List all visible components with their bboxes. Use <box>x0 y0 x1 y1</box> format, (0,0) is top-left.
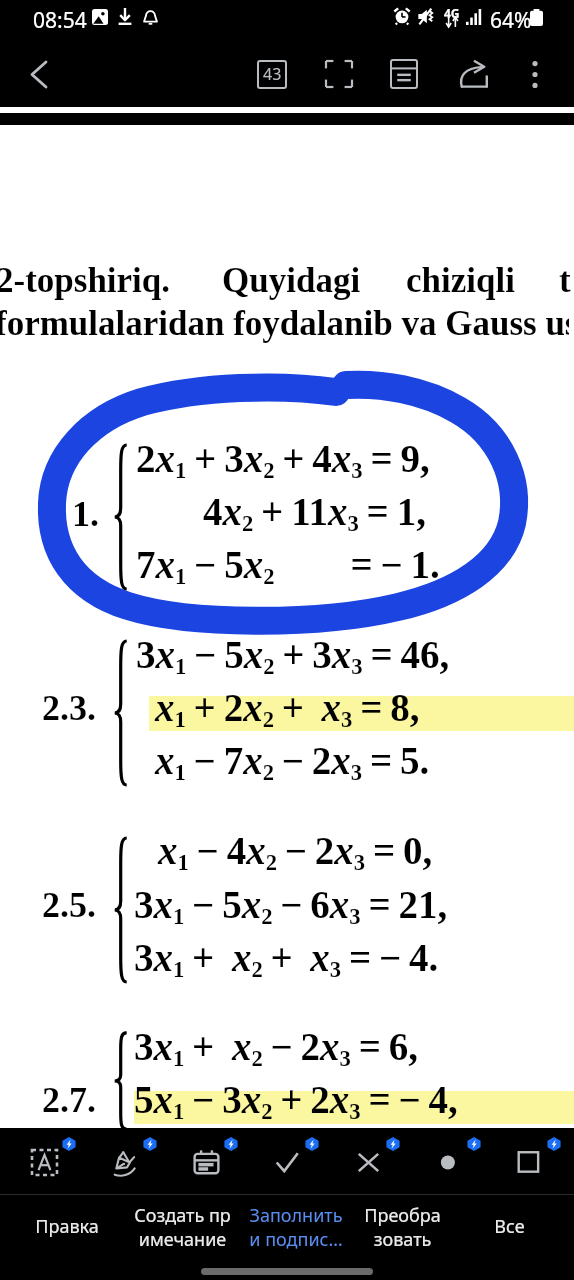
staticText: 2.3. <box>42 688 96 728</box>
button[interactable]: Square <box>501 1128 574 1194</box>
button[interactable]: Dot <box>421 1128 502 1194</box>
staticText: Все <box>494 1214 525 1239</box>
staticText: formulalaridan foydalanib va Gauss us <box>0 304 569 343</box>
staticText: chiziqli <box>406 261 515 300</box>
button[interactable]: Все <box>457 1195 562 1258</box>
staticText: Правка <box>35 1214 99 1239</box>
button[interactable]: Form <box>178 1128 259 1194</box>
button[interactable]: Check mark <box>259 1128 340 1194</box>
staticText: x1 − 7x2 − 2x3 = 5. <box>155 739 430 785</box>
button[interactable]: Page number <box>243 45 301 103</box>
staticText: Создать пр имечание <box>134 1203 231 1251</box>
staticText: x1 − 4x2 − 2x3 = 0, <box>158 829 433 875</box>
staticText: 08:54 <box>33 6 87 35</box>
staticText: 3x1 + x2 − 2x3 = 6, <box>134 1025 418 1071</box>
staticText: 1. <box>72 494 99 534</box>
staticText: 64% <box>490 6 532 35</box>
button[interactable]: Sign <box>97 1128 178 1194</box>
staticText: 4G <box>444 5 460 21</box>
button[interactable]: Создать пр имечание <box>125 1195 240 1258</box>
staticText: 5x1 − 3x2 + 2x3 = − 4, <box>134 1078 458 1124</box>
button[interactable]: Back <box>10 45 68 103</box>
button[interactable]: More options <box>506 45 564 103</box>
button[interactable]: Text box <box>16 1128 97 1194</box>
staticText: 3x1 − 5x2 + 3x3 = 46, <box>136 633 450 679</box>
button[interactable]: Cross mark <box>340 1128 421 1194</box>
button[interactable]: Fit to screen <box>310 45 368 103</box>
button[interactable]: Share <box>445 45 503 103</box>
staticText: 2.7. <box>42 1080 96 1120</box>
staticText: 3x1 − 5x2 − 6x3 = 21, <box>134 883 448 929</box>
staticText: 2x1 + 3x2 + 4x3 = 9, <box>136 437 430 483</box>
button[interactable]: Преобра зовать <box>350 1195 455 1258</box>
staticText: 3x1 + x2 + x3 = − 4. <box>134 936 439 982</box>
staticText: Заполнить и подпис… <box>249 1203 343 1251</box>
staticText: 2.5. <box>42 885 96 925</box>
staticText: 2-topshiriq. <box>0 261 171 300</box>
staticText: 43 <box>263 63 282 85</box>
button[interactable]: Правка <box>11 1195 123 1258</box>
staticText: 7x1 − 5x2 = − 1. <box>136 543 440 589</box>
staticText: t <box>559 261 571 300</box>
button[interactable]: Outline <box>375 45 433 103</box>
button[interactable]: Заполнить и подпис… <box>241 1195 351 1258</box>
staticText: Преобра зовать <box>364 1203 441 1251</box>
staticText: Quyidagi <box>222 261 361 300</box>
staticText: x1 + 2x2 + x3 = 8, <box>155 686 420 732</box>
staticText: 4x2 + 11x3 = 1, <box>203 490 426 536</box>
